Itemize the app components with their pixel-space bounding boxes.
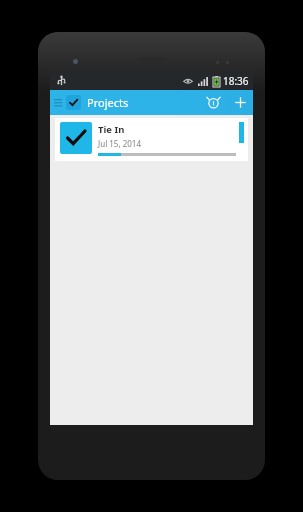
- button[interactable]: Reminders: [199, 90, 227, 115]
- button[interactable]: Open navigation drawer: [50, 90, 66, 115]
- button[interactable]: Toggle project complete: [60, 122, 92, 154]
- staticText: Jul 15, 2014: [98, 138, 141, 149]
- button[interactable]: Add project: [227, 90, 253, 115]
- staticText: 18:36: [223, 74, 249, 88]
- button[interactable]: App icon: [66, 95, 81, 110]
- staticText: Tie In: [98, 123, 125, 136]
- button[interactable]: Toggle project complete: [55, 118, 248, 161]
- staticText: Projects: [87, 95, 129, 110]
